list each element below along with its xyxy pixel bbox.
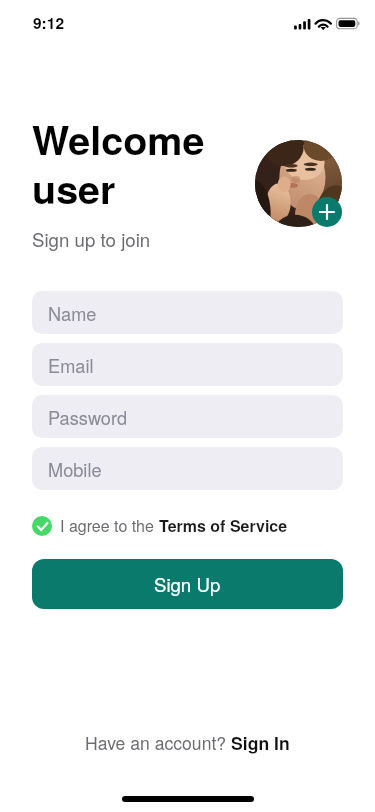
staticText: 9:12 [33,12,65,34]
button[interactable]: Name [32,291,343,334]
staticText: Have an account? [85,730,231,755]
staticText: Welcome user [32,111,205,216]
button[interactable]: I agree to the [32,514,288,537]
staticText: Terms of Service [159,514,288,537]
button[interactable]: Password [32,395,343,438]
button[interactable]: Have an account? [85,730,290,755]
staticText: Password [48,404,128,430]
staticText: Sign In [231,730,290,755]
staticText: Name [48,300,97,326]
button[interactable]: Add profile photo [312,197,342,227]
staticText: Mobile [48,456,102,482]
staticText: Email [48,352,94,378]
staticText: I agree to the [60,514,159,537]
button[interactable]: Mobile [32,447,343,490]
button[interactable]: Email [32,343,343,386]
staticText: Sign Up [154,571,221,598]
button[interactable]: Sign Up [32,559,343,609]
staticText: Sign up to join [32,226,151,253]
